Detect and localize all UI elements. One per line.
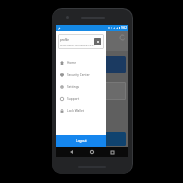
- staticText: Lock Wallet: [67, 109, 84, 113]
- other: Refresh: [120, 35, 125, 40]
- staticText: Security Center: [67, 73, 90, 77]
- staticText: Home: [67, 61, 77, 65]
- button[interactable]: Home: [86, 147, 98, 157]
- button[interactable]: Security Center: [56, 69, 106, 81]
- button[interactable]: Settings: [56, 81, 106, 93]
- staticText: 9:52: [121, 26, 127, 30]
- staticText: Logout: [76, 139, 87, 143]
- button[interactable]: Support: [56, 93, 106, 105]
- button[interactable]: Back: [65, 147, 77, 157]
- staticText: Settings: [67, 85, 80, 89]
- staticText: profile: [60, 38, 69, 42]
- staticText: MY COLLECTION: [57, 43, 84, 48]
- staticText: 0x7ac7fa2d1-4p-fk8fq7d1c5-01: [60, 43, 95, 46]
- staticText: 0: [61, 61, 65, 69]
- button[interactable]: Logout: [58, 132, 126, 146]
- button[interactable]: Lock Wallet: [56, 105, 106, 117]
- staticText: Support: [67, 97, 80, 101]
- button[interactable]: Home: [56, 57, 106, 69]
- button[interactable]: Logout: [56, 135, 106, 147]
- button[interactable]: Recents: [106, 147, 118, 157]
